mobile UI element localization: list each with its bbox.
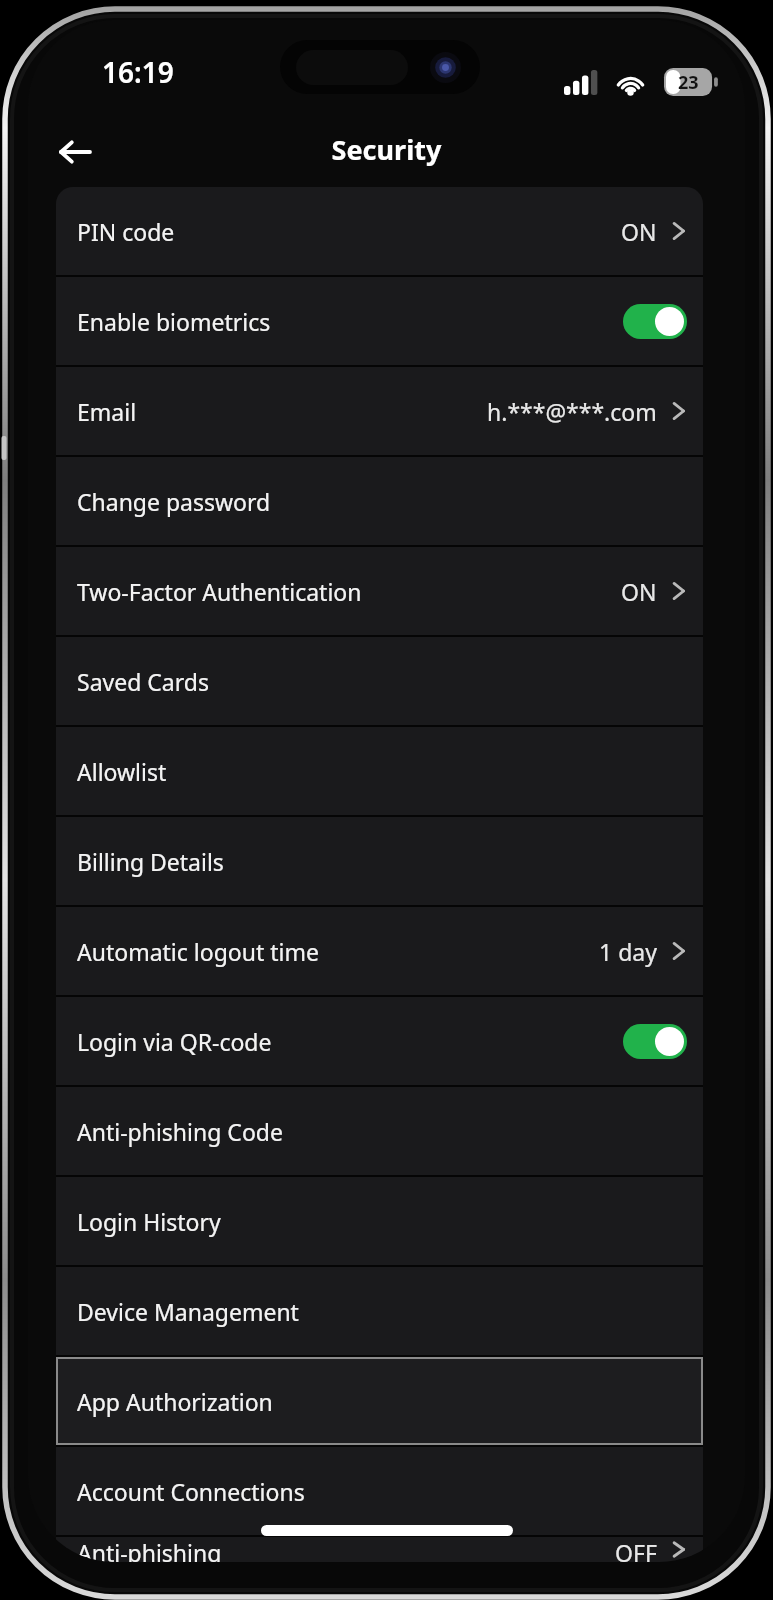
button[interactable]: Saved Cards xyxy=(56,637,703,725)
button[interactable]: Allowlist xyxy=(56,727,703,815)
button[interactable]: Login History xyxy=(56,1177,703,1265)
button[interactable]: Email xyxy=(56,367,703,455)
staticText: Device Management xyxy=(77,1296,299,1327)
button[interactable]: App Authorization xyxy=(56,1357,703,1445)
staticText: Account Connections xyxy=(77,1476,305,1507)
staticText: OFF xyxy=(615,1537,657,1562)
button[interactable]: Automatic logout time xyxy=(56,907,703,995)
button[interactable]: Billing Details xyxy=(56,817,703,905)
button[interactable]: Device Management xyxy=(56,1267,703,1355)
button[interactable]: Change password xyxy=(56,457,703,545)
button[interactable]: Account Connections xyxy=(56,1447,703,1535)
staticText: ON xyxy=(621,576,657,607)
button[interactable]: Enable biometrics xyxy=(56,277,703,365)
staticText: 23 xyxy=(678,70,699,95)
button[interactable]: Login via QR-code xyxy=(56,997,703,1085)
staticText: Email xyxy=(77,396,137,427)
staticText: ON xyxy=(621,216,657,247)
button[interactable]: Switch on xyxy=(623,304,687,339)
staticText: h.***@***.com xyxy=(487,396,657,427)
staticText: PIN code xyxy=(77,216,175,247)
staticText: Anti-phishing xyxy=(77,1537,222,1562)
staticText: Billing Details xyxy=(77,846,224,877)
button[interactable]: Anti-phishing Code xyxy=(56,1087,703,1175)
button[interactable]: PIN code xyxy=(56,187,703,275)
staticText: Two-Factor Authentication xyxy=(77,576,362,607)
button[interactable]: Back xyxy=(44,121,106,183)
staticText: Allowlist xyxy=(77,756,167,787)
staticText: 1 day xyxy=(599,936,657,967)
staticText: Login via QR-code xyxy=(77,1026,272,1057)
staticText: Security xyxy=(28,131,745,168)
staticText: Enable biometrics xyxy=(77,306,271,337)
staticText: 16:19 xyxy=(102,53,174,91)
staticText: Anti-phishing Code xyxy=(77,1116,283,1147)
button[interactable]: Anti-phishing xyxy=(56,1537,703,1562)
button[interactable]: Two-Factor Authentication xyxy=(56,547,703,635)
staticText: Change password xyxy=(77,486,271,517)
staticText: Automatic logout time xyxy=(77,936,319,967)
staticText: Login History xyxy=(77,1206,221,1237)
staticText: App Authorization xyxy=(77,1386,273,1417)
button[interactable]: Switch on xyxy=(623,1024,687,1059)
staticText: Saved Cards xyxy=(77,666,209,697)
